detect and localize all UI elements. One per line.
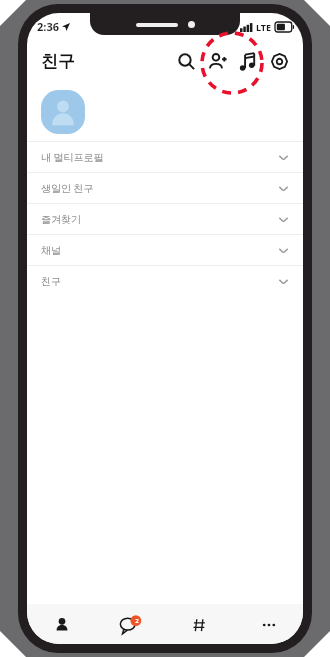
staticText: 친구: [41, 51, 75, 72]
staticText: 생일인 친구: [41, 181, 94, 195]
staticText: 채널: [41, 244, 61, 257]
staticText: 2:36: [37, 19, 59, 34]
staticText: LTE: [256, 21, 272, 33]
staticText: 내 멀티프로필: [41, 150, 104, 164]
button[interactable]: Add friend: [202, 46, 233, 77]
staticText: 2: [135, 617, 139, 625]
button[interactable]: Chats, 2 unread: [103, 607, 159, 643]
button[interactable]: 친구: [27, 266, 303, 296]
staticText: 친구: [41, 275, 61, 288]
button[interactable]: Open chat: [172, 607, 228, 643]
button[interactable]: 내 멀티프로필: [27, 142, 303, 172]
button[interactable]: 생일인 친구: [27, 173, 303, 203]
button[interactable]: Settings: [264, 46, 295, 77]
button[interactable]: More: [241, 607, 297, 643]
button[interactable]: 채널: [27, 235, 303, 265]
button[interactable]: Search: [171, 46, 202, 77]
button[interactable]: 즐겨찾기: [27, 204, 303, 234]
button[interactable]: Profile: [41, 90, 85, 134]
button[interactable]: Friends: [34, 607, 90, 643]
button[interactable]: Music: [233, 46, 264, 77]
staticText: 즐겨찾기: [41, 213, 81, 226]
